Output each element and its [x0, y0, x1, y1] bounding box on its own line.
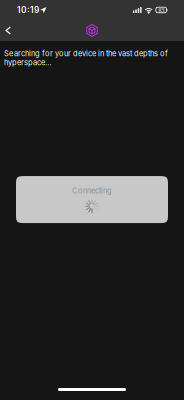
staticText: 10:19 — [17, 5, 39, 15]
staticText: Searching for your device in the vast de… — [4, 49, 168, 67]
button[interactable]: Back — [0, 21, 21, 39]
staticText: Connecting — [72, 186, 112, 195]
staticText: 83 — [158, 6, 164, 14]
